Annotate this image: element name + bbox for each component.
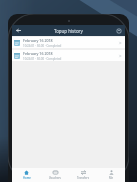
- button[interactable]: Home: [12, 168, 41, 182]
- button[interactable]: More options: [113, 25, 125, 36]
- staticText: February 16 2018: [23, 38, 53, 43]
- staticText: 10:24:01 · 50.00 · Completed: [23, 44, 62, 48]
- staticText: Me: [109, 176, 114, 180]
- staticText: Transfers: [77, 176, 89, 180]
- button[interactable]: February 16 2018: [12, 37, 125, 48]
- button[interactable]: Navigate up: [12, 25, 25, 36]
- staticText: February 16 2018: [23, 51, 53, 56]
- button[interactable]: February 16 2018: [12, 50, 125, 61]
- button[interactable]: Transfers: [69, 168, 97, 182]
- staticText: 10:24:01 · 50.00 · Completed: [23, 57, 62, 61]
- staticText: Vouchers: [49, 176, 61, 180]
- button[interactable]: Me: [97, 168, 125, 182]
- staticText: Home: [23, 176, 31, 180]
- staticText: Topup history: [54, 28, 83, 34]
- button[interactable]: Vouchers: [41, 168, 69, 182]
